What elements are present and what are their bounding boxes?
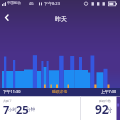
staticText: 92: [95, 101, 109, 117]
staticText: 睡眠详情: [52, 89, 68, 94]
staticText: 下午11:30: [3, 89, 21, 94]
staticText: 共睡了: [3, 99, 12, 103]
button[interactable]: 睡眠详情: [51, 88, 71, 96]
staticText: 25: [16, 102, 29, 117]
staticText: 小时: [8, 107, 17, 113]
button[interactable]: 睡眠分数: [81, 97, 117, 120]
staticText: 7: [3, 102, 10, 117]
staticText: 分钟: [26, 107, 36, 113]
staticText: 中国移动: [7, 1, 21, 5]
staticText: 分: [107, 107, 113, 114]
staticText: 睡眠分数: [99, 99, 111, 103]
staticText: 昨天: [55, 15, 67, 23]
staticText: 下午8:23: [44, 1, 60, 6]
staticText: 上午7:30: [101, 89, 117, 94]
button[interactable]: 共睡了: [0, 97, 80, 120]
button[interactable]: [0, 10, 18, 25]
staticText: 4G: [29, 1, 34, 6]
